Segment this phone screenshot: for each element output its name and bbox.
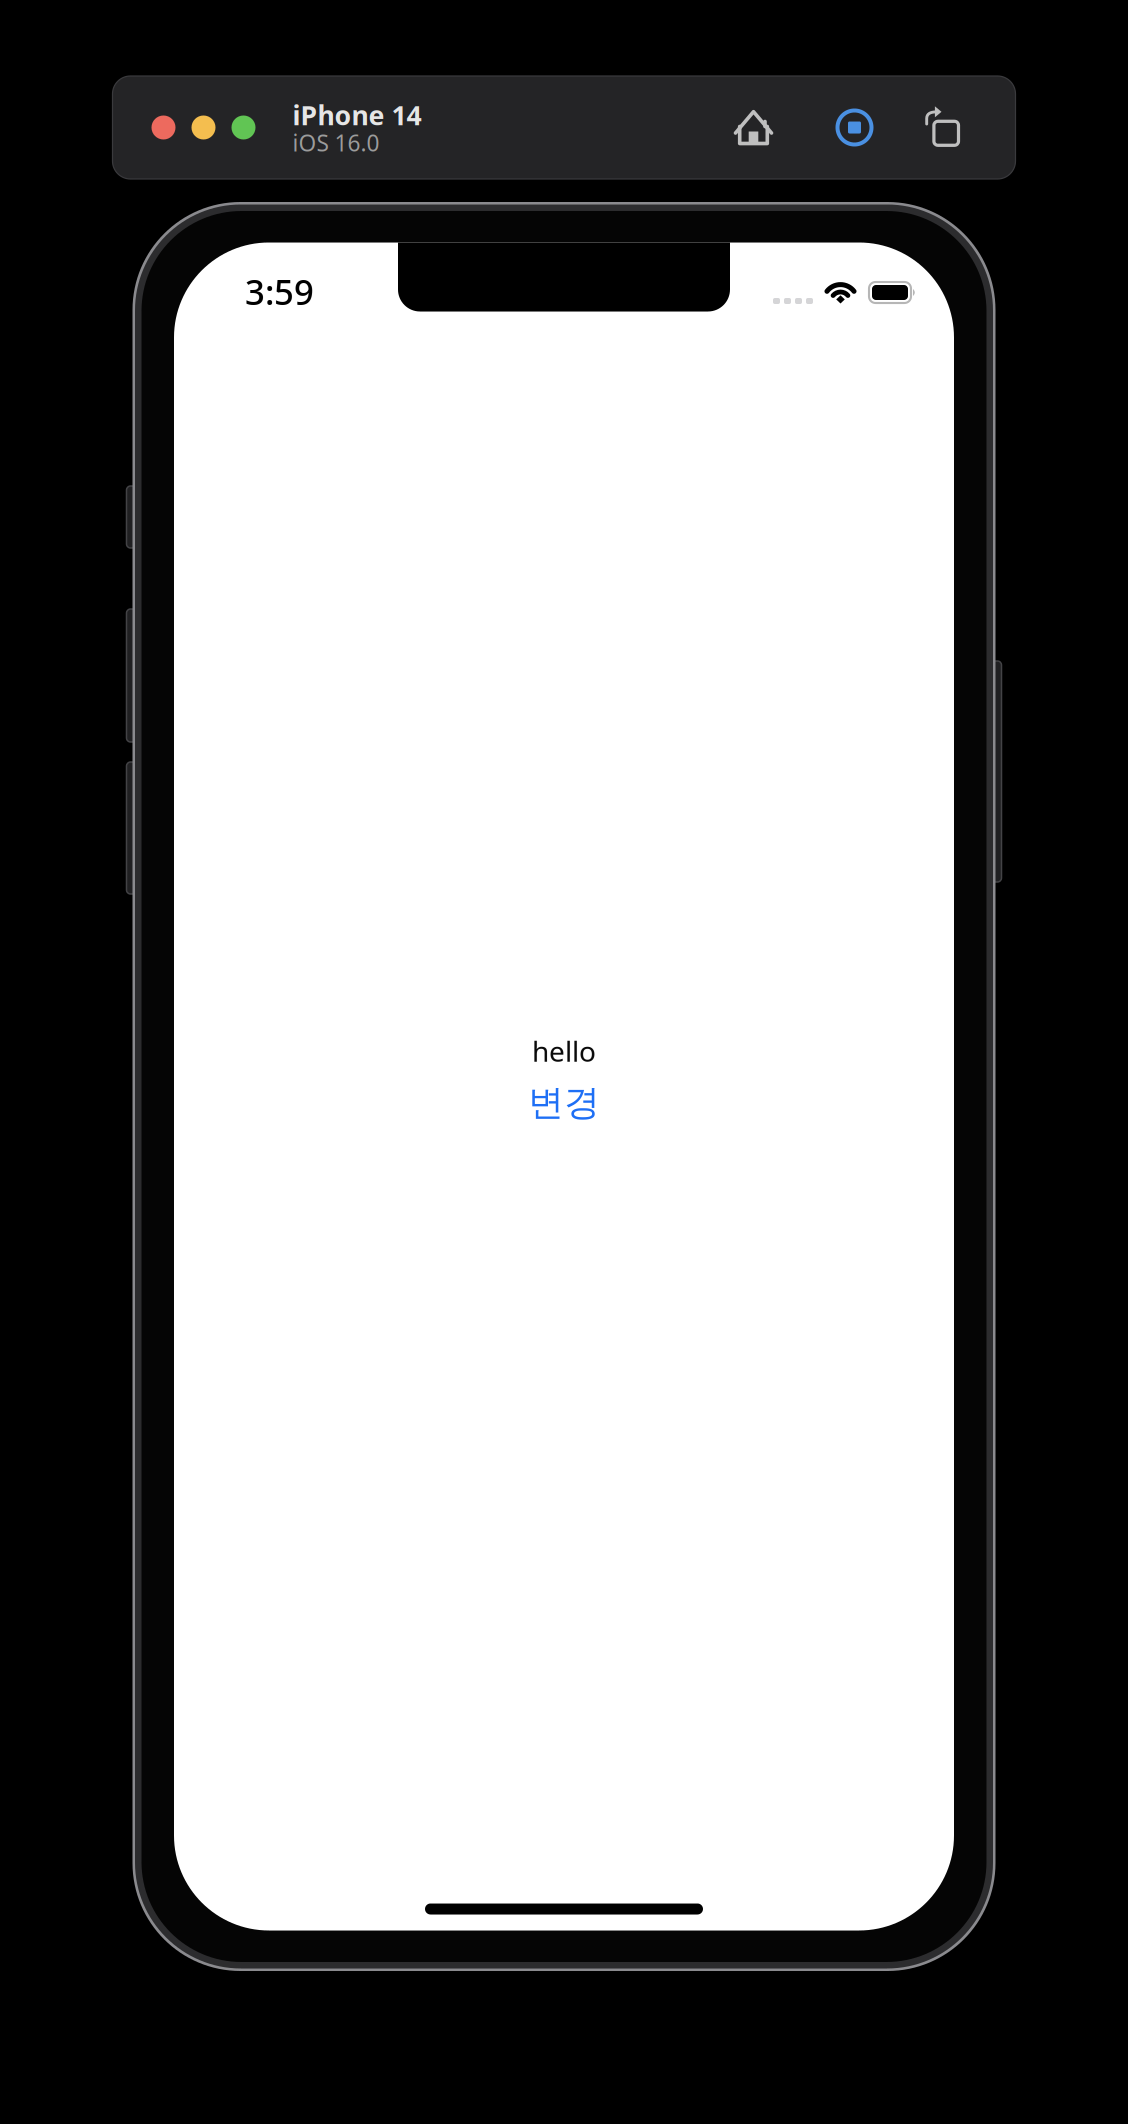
staticText: iPhone 14 [292,97,421,133]
staticText: hello [532,1032,596,1069]
button[interactable]: Minimise [191,115,215,139]
staticText: iOS 16.0 [292,128,379,158]
button[interactable]: 변경 [528,1080,600,1125]
button[interactable]: Close [151,115,175,139]
button[interactable]: Rotate [925,108,960,146]
staticText: 변경 [528,1080,600,1125]
button[interactable]: Home [733,109,773,145]
button[interactable]: Zoom [231,115,255,139]
button[interactable]: Record [837,110,871,144]
staticText: 3:59 [245,268,314,314]
